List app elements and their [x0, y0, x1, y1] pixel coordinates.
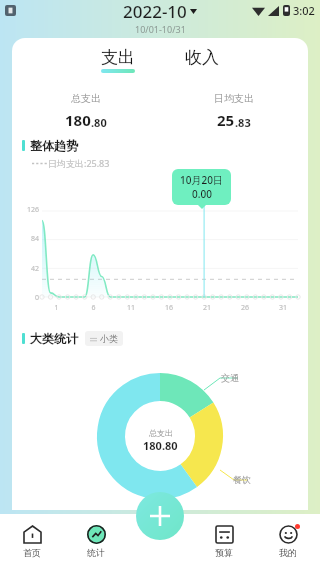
staticText: 26	[226, 303, 264, 313]
staticText: 16	[150, 303, 188, 313]
button[interactable]: 统计	[64, 514, 128, 568]
staticText: 126	[27, 205, 40, 215]
staticText: 预算	[215, 547, 233, 558]
staticText: 10月20日	[180, 173, 223, 187]
staticText: 整体趋势	[30, 138, 78, 153]
staticText: 180.80	[143, 438, 178, 453]
button[interactable]: 首页	[0, 514, 64, 568]
button[interactable]: 支出	[87, 43, 149, 77]
staticText: 大类统计	[30, 331, 78, 346]
staticText: 总支出	[71, 92, 101, 105]
staticText: 10/01-10/31	[135, 23, 186, 35]
staticText: 0	[35, 293, 40, 303]
staticText: 餐饮	[233, 474, 251, 485]
staticText: 1	[38, 303, 75, 313]
staticText: 25	[217, 110, 235, 130]
button[interactable]: 总支出	[12, 92, 160, 130]
staticText: 收入	[185, 47, 219, 68]
staticText: 我的	[279, 547, 297, 558]
button[interactable]: 2022-10	[117, 0, 203, 23]
staticText: 日均支出:25.83	[48, 157, 110, 169]
button[interactable]: 126	[12, 169, 308, 319]
button[interactable]: 小类	[85, 331, 123, 346]
staticText: 3:02	[293, 3, 315, 18]
staticText: 180	[65, 110, 91, 130]
button[interactable]: 我的	[256, 514, 320, 568]
button[interactable]: Add record	[136, 492, 184, 540]
staticText: 日均支出	[214, 92, 254, 105]
staticText: 84	[31, 234, 40, 244]
staticText: 6	[75, 303, 112, 313]
staticText: 支出	[101, 47, 135, 68]
staticText: .80	[91, 115, 107, 130]
staticText: 首页	[23, 547, 41, 558]
staticText: 统计	[87, 547, 105, 558]
staticText: 0.00	[192, 187, 212, 201]
staticText: 31	[264, 303, 302, 313]
staticText: 11	[112, 303, 150, 313]
staticText: 2022-10	[123, 0, 187, 23]
staticText: 交通	[221, 372, 239, 383]
button[interactable]: 预算	[192, 514, 256, 568]
staticText: 总支出	[149, 428, 173, 438]
staticText: 21	[188, 303, 226, 313]
staticText: .83	[235, 115, 251, 130]
button[interactable]: 日均支出	[160, 92, 308, 130]
button[interactable]: 收入	[171, 43, 233, 77]
staticText: 小类	[100, 333, 118, 344]
button[interactable]: 总支出	[12, 346, 308, 496]
staticText: 42	[31, 264, 40, 274]
